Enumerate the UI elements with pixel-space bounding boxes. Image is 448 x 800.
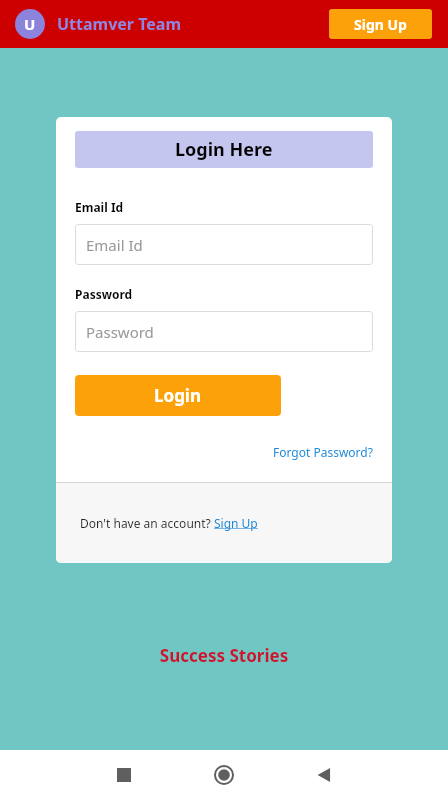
staticText: Success Stories	[0, 644, 448, 667]
staticText: Password	[86, 322, 154, 342]
button[interactable]: Email Id	[75, 224, 373, 265]
button[interactable]: Forgot Password?	[273, 444, 373, 460]
button[interactable]: Sign Up	[329, 9, 432, 39]
button[interactable]: U	[15, 9, 182, 39]
button[interactable]: Recent apps	[74, 750, 174, 800]
button[interactable]: Sign Up	[214, 515, 258, 531]
staticText: Login	[154, 384, 202, 407]
staticText: Uttamver Team	[57, 13, 182, 35]
staticText: Sign Up	[354, 15, 407, 34]
staticText: Login Here	[175, 137, 273, 162]
button[interactable]: Home	[174, 750, 274, 800]
staticText: Password	[75, 286, 133, 302]
button[interactable]: Back	[274, 750, 374, 800]
staticText: Don't have an account?	[80, 515, 214, 531]
button[interactable]: Password	[75, 311, 373, 352]
staticText: Email Id	[75, 199, 124, 215]
staticText: Email Id	[86, 235, 143, 255]
staticText: U	[24, 14, 36, 34]
button[interactable]: Login	[75, 375, 281, 416]
